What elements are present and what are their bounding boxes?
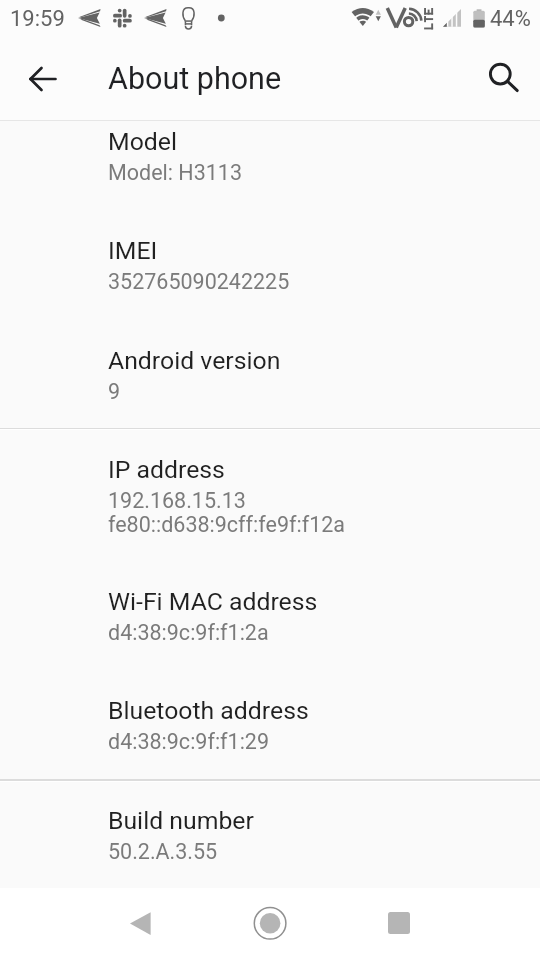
button[interactable]: Build number: [0, 790, 540, 876]
button[interactable]: Back: [115, 899, 165, 949]
staticText: Bluetooth address: [108, 696, 309, 725]
staticText: 192.168.15.13: [108, 488, 246, 513]
staticText: fe80::d638:9cff:fe9f:f12a: [108, 512, 346, 537]
button[interactable]: Back: [18, 54, 68, 104]
button[interactable]: Wi-Fi MAC address: [0, 571, 540, 657]
button[interactable]: Recents: [375, 899, 423, 947]
button[interactable]: IP address: [0, 439, 540, 549]
staticText: d4:38:9c:9f:f1:29: [108, 729, 270, 754]
staticText: Model: [108, 127, 177, 156]
staticText: Android version: [108, 346, 281, 375]
button[interactable]: Home: [246, 899, 294, 947]
staticText: Wi-Fi MAC address: [108, 587, 318, 616]
staticText: 44%: [490, 6, 531, 32]
staticText: 19:59: [10, 6, 65, 32]
button[interactable]: Model: [0, 111, 540, 196]
button[interactable]: IMEI: [0, 220, 540, 306]
staticText: About phone: [108, 61, 282, 97]
button[interactable]: Android version: [0, 330, 540, 416]
button[interactable]: Bluetooth address: [0, 680, 540, 766]
staticText: 50.2.A.3.55: [108, 839, 218, 864]
staticText: Model: H3113: [108, 160, 242, 185]
button[interactable]: Search: [477, 51, 527, 101]
staticText: 9: [108, 379, 121, 404]
staticText: Build number: [108, 806, 254, 835]
staticText: IP address: [108, 455, 225, 484]
staticText: IMEI: [108, 236, 158, 265]
staticText: 352765090242225: [108, 269, 290, 294]
staticText: d4:38:9c:9f:f1:2a: [108, 620, 269, 645]
